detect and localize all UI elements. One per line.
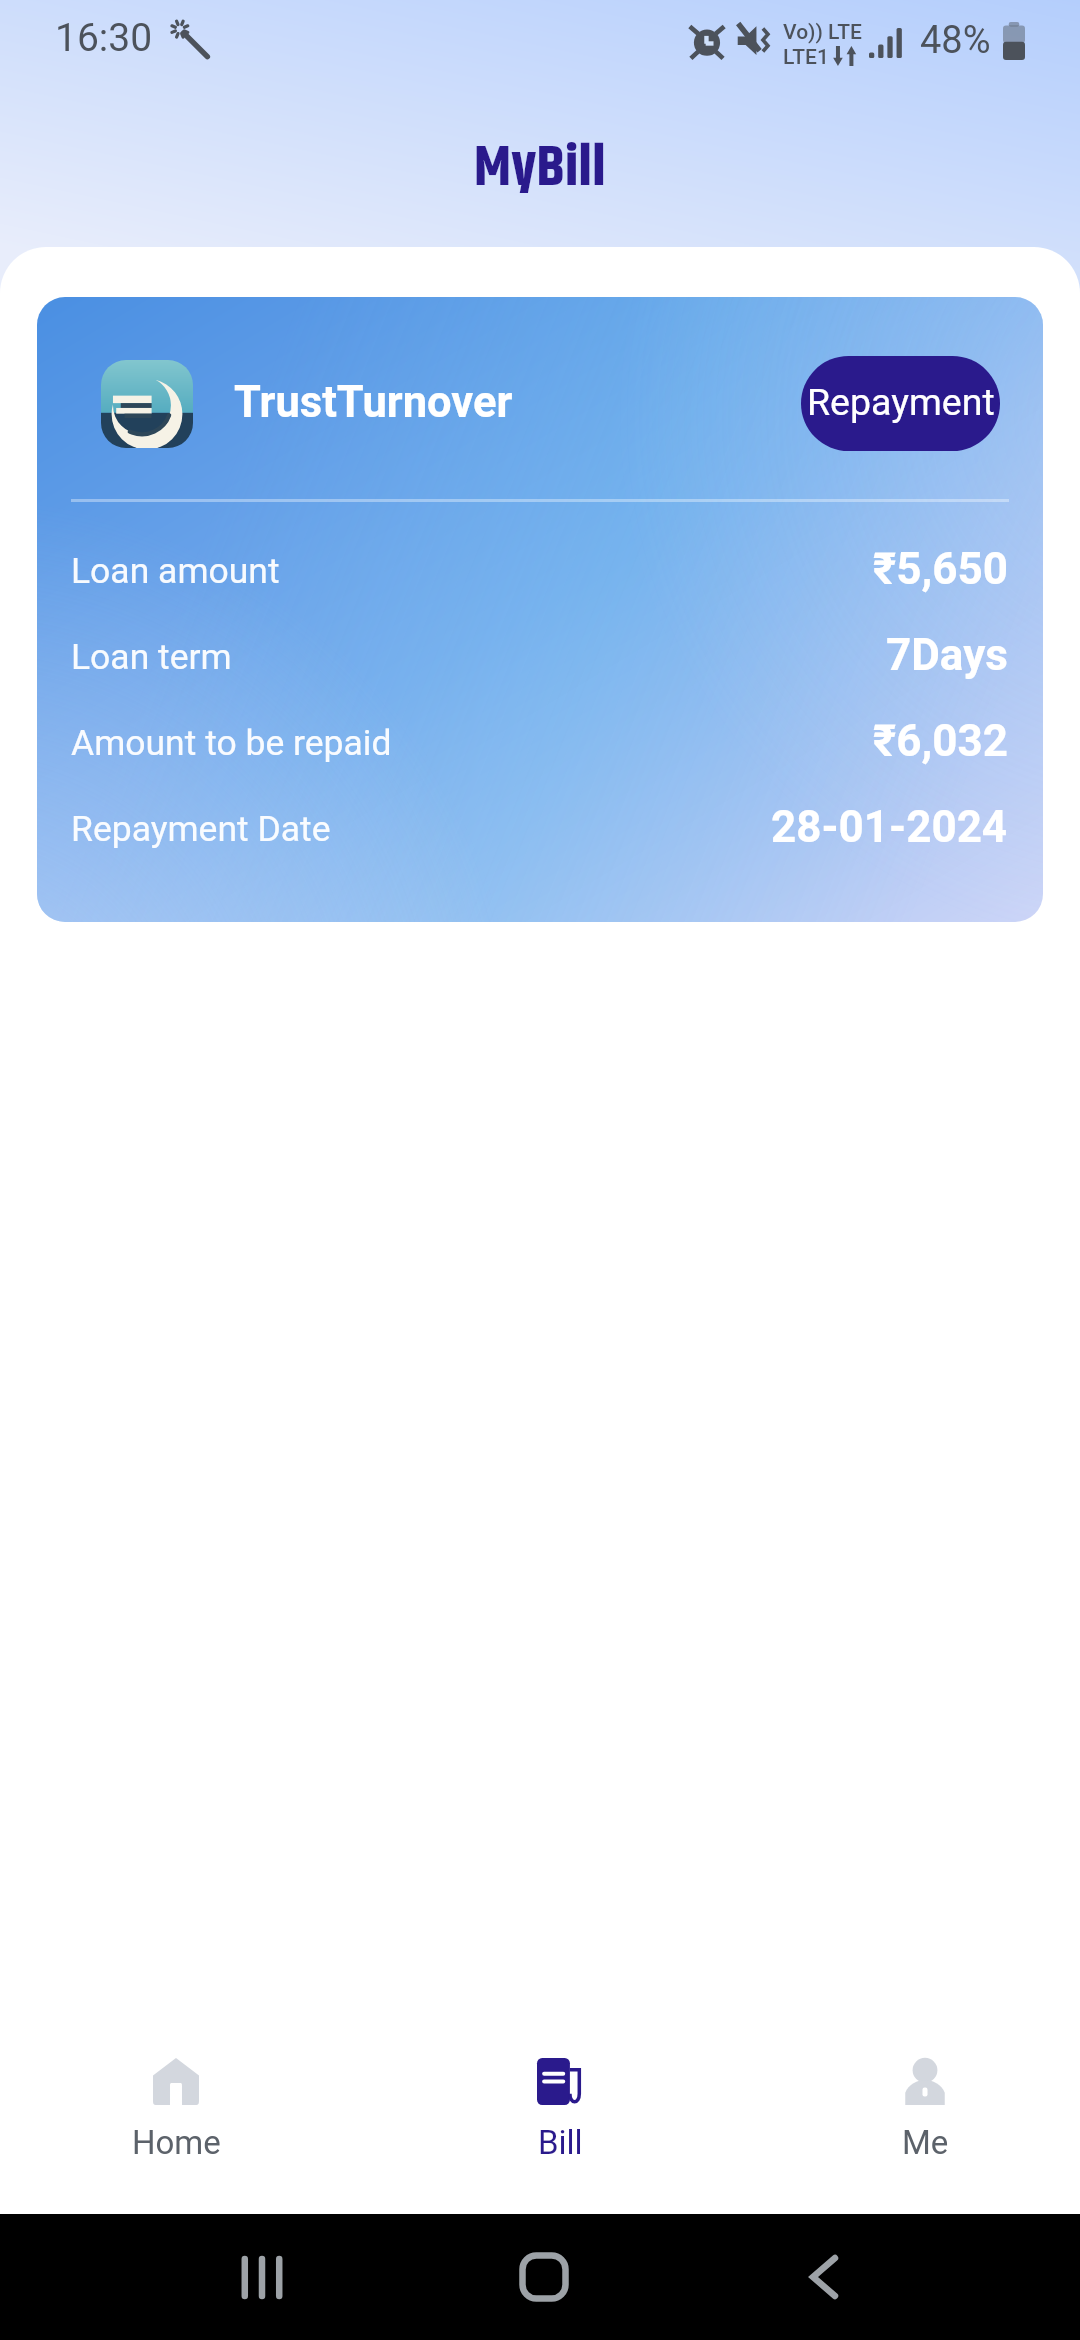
button[interactable]: Repayment — [801, 356, 1000, 451]
staticText: Repayment Date — [71, 808, 331, 850]
button[interactable]: Home — [484, 2214, 604, 2340]
staticText: Loan amount — [71, 550, 280, 592]
button[interactable]: Bill — [480, 2020, 640, 2214]
staticText: 7Days — [886, 629, 1008, 681]
staticText: LTE — [828, 20, 862, 45]
button[interactable]: TrustTurnover — [37, 297, 1043, 922]
button[interactable]: Recent apps — [202, 2214, 322, 2340]
button[interactable]: Home — [96, 2020, 256, 2214]
staticText: Bill — [538, 2123, 583, 2162]
staticText: 28-01-2024 — [771, 801, 1008, 853]
staticText: ₹5,650 — [873, 543, 1008, 595]
button[interactable]: Me — [845, 2020, 1005, 2214]
staticText: Repayment — [807, 380, 995, 424]
staticText: Loan term — [71, 636, 232, 678]
staticText: Vo)) — [783, 20, 823, 45]
staticText: 48% — [920, 18, 991, 63]
staticText: Amount to be repaid — [71, 722, 392, 764]
staticText: Me — [902, 2123, 949, 2162]
staticText: ₹6,032 — [873, 715, 1008, 767]
staticText: TrustTurnover — [234, 377, 513, 428]
staticText: LTE1 — [783, 45, 829, 70]
button[interactable]: Back — [764, 2214, 884, 2340]
staticText: Home — [132, 2123, 221, 2162]
staticText: 16:30 — [55, 15, 153, 61]
staticText: MyBill — [474, 125, 606, 212]
